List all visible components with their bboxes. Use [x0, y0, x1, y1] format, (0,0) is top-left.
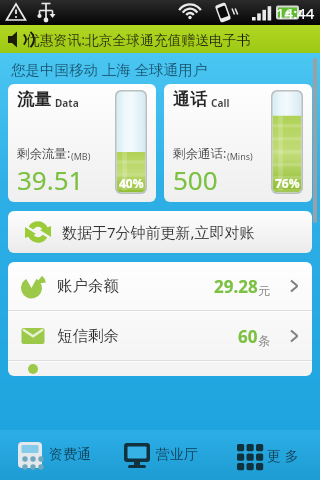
staticText: 账户余额: [57, 276, 119, 296]
other: 营业厅: [122, 440, 152, 470]
staticText: 资费通: [49, 446, 91, 464]
staticText: Data: [55, 96, 79, 110]
staticText: 剩余通话:: [173, 145, 227, 162]
staticText: 优惠资讯:北京全球通充值赠送电子书: [26, 30, 251, 49]
staticText: 通话: [173, 89, 207, 110]
staticText: 流量: [17, 89, 51, 110]
staticText: 条: [258, 333, 270, 348]
staticText: 营业厅: [156, 446, 198, 464]
staticText: 剩余流量:: [17, 145, 71, 162]
staticText: 60: [238, 325, 258, 348]
button[interactable]: 更多: [213, 430, 320, 480]
other: 通知: [7, 30, 26, 49]
button[interactable]: 营业厅: [106, 430, 213, 480]
staticText: 39.51: [17, 162, 84, 197]
staticText: 元: [258, 283, 270, 298]
staticText: 更 多: [267, 446, 299, 465]
staticText: 76%: [275, 175, 300, 191]
staticText: 14:44: [276, 3, 315, 23]
staticText: 短信剩余: [57, 326, 119, 346]
staticText: (Mins): [227, 150, 253, 162]
button[interactable]: [8, 362, 312, 376]
button[interactable]: 资费通: [0, 430, 106, 480]
other: 资费通: [15, 440, 45, 470]
staticText: 数据于7分钟前更新,立即对账: [62, 222, 255, 242]
staticText: 40%: [119, 175, 144, 191]
button[interactable]: 短信剩余: [8, 312, 312, 360]
staticText: (MB): [71, 150, 91, 162]
staticText: 29.28: [214, 275, 258, 298]
other: 更多: [235, 441, 263, 469]
button[interactable]: 流量: [8, 84, 156, 202]
button[interactable]: 通话: [164, 84, 312, 202]
staticText: Call: [211, 96, 230, 110]
button[interactable]: 数据于7分钟前更新,立即对账: [8, 211, 312, 253]
staticText: 500: [173, 162, 218, 197]
staticText: 您是中国移动 上海 全球通用户: [11, 59, 208, 79]
button[interactable]: 账户余额: [8, 262, 312, 310]
button[interactable]: 通知: [0, 25, 320, 53]
